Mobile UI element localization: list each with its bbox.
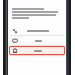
button[interactable]: Share screen [8,46,66,55]
button[interactable]: Chat [8,36,66,45]
button[interactable]: Call [8,26,66,35]
